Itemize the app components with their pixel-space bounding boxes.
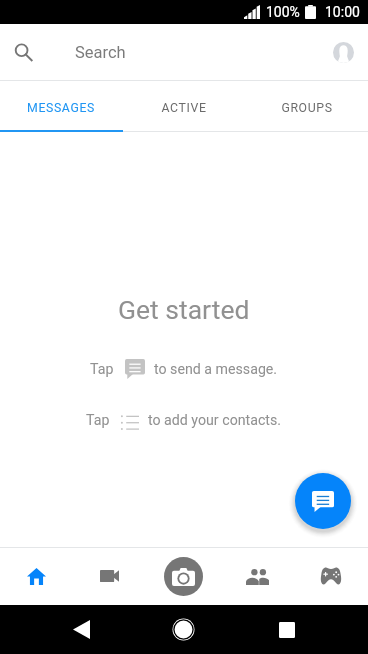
staticText: Tap (86, 412, 110, 429)
staticText: 100% (266, 4, 300, 20)
staticText: Tap (90, 361, 114, 378)
button[interactable]: Contacts (220, 547, 294, 605)
button[interactable]: ACTIVE (122, 84, 245, 132)
button[interactable]: Home (0, 547, 73, 605)
button[interactable]: Games (294, 547, 368, 605)
staticText: Get started (118, 294, 250, 325)
staticText: to send a message. (154, 361, 278, 378)
button[interactable]: Search (0, 24, 47, 81)
staticText: Search (75, 43, 126, 62)
button[interactable]: Recents (256, 605, 317, 654)
staticText: to add your contacts. (148, 412, 282, 429)
button[interactable]: MESSAGES (0, 84, 122, 132)
button[interactable]: Camera (164, 557, 203, 596)
staticText: GROUPS (281, 101, 333, 115)
button[interactable]: Home (153, 605, 214, 654)
staticText: ACTIVE (161, 101, 207, 115)
button[interactable]: GROUPS (245, 84, 368, 132)
staticText: MESSAGES (27, 101, 95, 115)
button[interactable]: Back (51, 605, 112, 654)
button[interactable]: Account (333, 42, 354, 63)
staticText: 10:00 (325, 4, 360, 20)
button[interactable]: Start chat (295, 473, 351, 529)
button[interactable]: Video call (73, 547, 146, 605)
